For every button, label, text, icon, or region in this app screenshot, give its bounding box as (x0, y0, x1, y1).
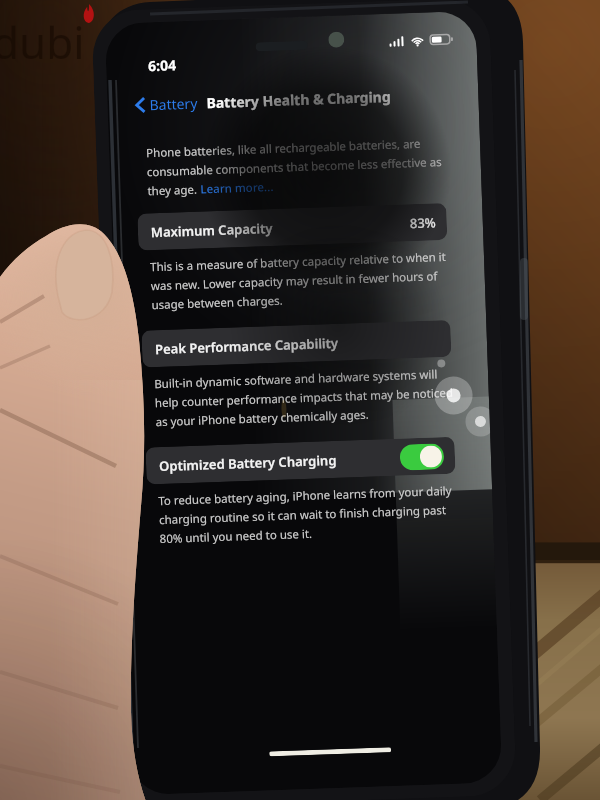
staticText: dubi (0, 12, 85, 72)
staticText: Maximum Capacity (151, 219, 273, 241)
staticText: help counter performance impacts that ma… (155, 385, 454, 411)
staticText: usage between charges. (151, 293, 284, 313)
staticText: 6:04 (148, 55, 176, 75)
button[interactable]: Learn more... (200, 179, 274, 197)
staticText: To reduce battery aging, iPhone learns f… (158, 483, 452, 509)
staticText: Battery (149, 93, 198, 114)
staticText: consumable components that become less e… (147, 154, 442, 180)
button[interactable]: Maximum Capacity (137, 203, 447, 251)
staticText: Phone batteries, like all rechargeable b… (146, 136, 421, 161)
staticText: Peak Performance Capability (155, 334, 339, 358)
staticText: was new. Lower capacity may result in fe… (151, 268, 438, 294)
staticText: Optimized Battery Charging (159, 451, 337, 475)
staticText: This is a measure of battery capacity re… (150, 249, 446, 275)
button[interactable]: Optimized Battery Charging (145, 437, 456, 485)
staticText: charging routine so it can wait to finis… (159, 502, 447, 528)
staticText: Battery Health & Charging (206, 87, 392, 112)
staticText: Built-in dynamic software and hardware s… (154, 366, 438, 392)
button[interactable]: Back to Battery (133, 88, 200, 120)
button[interactable]: Peak Performance Capability (141, 320, 451, 368)
staticText: 80% until you need to use it. (159, 526, 313, 547)
staticText: they age. (147, 181, 201, 199)
staticText: as your iPhone battery chemically ages. (155, 407, 370, 430)
button[interactable]: Optimized Battery Charging toggle, on (399, 443, 444, 471)
staticText: 83% (409, 213, 436, 232)
